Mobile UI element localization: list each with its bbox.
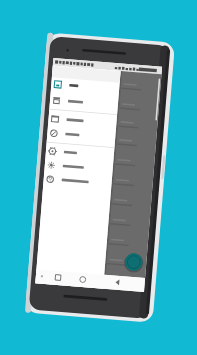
button[interactable]: Pulse/SMS Plus — [47, 163, 113, 177]
button[interactable]: Blocking — [47, 131, 113, 145]
button[interactable]: Recent apps — [57, 267, 75, 283]
button[interactable]: Archived — [47, 98, 113, 112]
button[interactable]: Back — [114, 267, 134, 283]
button[interactable]: Settings — [47, 149, 113, 163]
button[interactable]: Scheduled — [47, 117, 113, 131]
button[interactable]: Compose new message — [119, 249, 145, 275]
button[interactable]: Home — [80, 269, 98, 285]
button[interactable]: Help & feedback — [47, 177, 113, 191]
button[interactable]: Inbox — [47, 82, 113, 96]
